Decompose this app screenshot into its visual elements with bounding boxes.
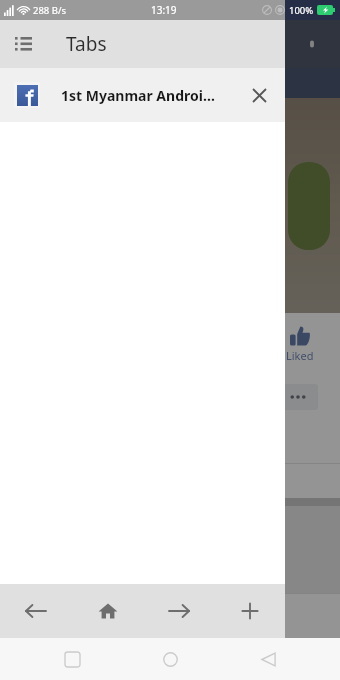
staticText: Tabs [66, 31, 107, 57]
button[interactable]: Back [247, 638, 289, 680]
button[interactable]: New tab [214, 584, 285, 638]
staticText: 288 B/s [33, 4, 67, 17]
button[interactable]: Home [149, 638, 191, 680]
staticText: Liked [286, 348, 314, 363]
staticText: 100% [289, 4, 314, 17]
button[interactable]: Close tab [236, 72, 282, 118]
staticText: osts [4, 607, 30, 625]
button[interactable]: Recents [51, 638, 93, 680]
button[interactable]: Tab list [0, 21, 46, 67]
button[interactable]: 1st Myanmar Androi… [0, 68, 285, 122]
staticText: 13:19 [151, 3, 177, 17]
button[interactable]: Back [0, 584, 72, 638]
button[interactable]: Forward [143, 584, 214, 638]
button[interactable]: Home [72, 584, 143, 638]
button[interactable]: More options [292, 24, 332, 64]
staticText: 1st Myanmar Androi… [61, 86, 215, 105]
